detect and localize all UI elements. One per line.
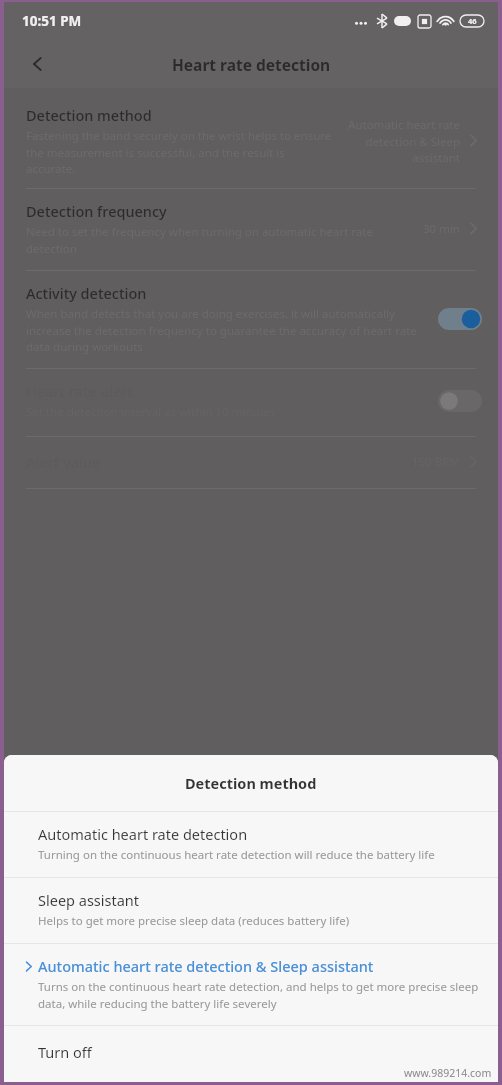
staticText: Turn off	[38, 1042, 92, 1062]
staticText: 10:51 PM	[22, 12, 82, 30]
staticText: Automatic heart rate detection & Sleep a…	[340, 117, 460, 165]
staticText: Activity detection	[26, 283, 147, 303]
staticText: 46	[468, 16, 477, 26]
staticText: Detection frequency	[26, 201, 167, 221]
staticText: Helps to get more precise sleep data (re…	[38, 913, 350, 929]
button[interactable]: Automatic heart rate detection & Sleep a…	[4, 944, 498, 1025]
button[interactable]: Activity detection	[4, 271, 498, 368]
staticText: When band detects that you are doing exe…	[26, 306, 428, 354]
staticText: www.989214.com	[404, 1066, 492, 1080]
staticText: Automatic heart rate detection	[38, 824, 248, 844]
button[interactable]: Automatic heart rate detection	[4, 812, 498, 877]
staticText: Detection method	[26, 105, 152, 125]
button[interactable]: Back	[18, 44, 58, 84]
staticText: 30 min	[423, 221, 460, 237]
button[interactable]: Toggle off	[438, 390, 482, 412]
staticText: Sleep assistant	[38, 890, 140, 910]
button[interactable]: Toggle on	[438, 308, 482, 330]
button[interactable]: Turn off	[4, 1026, 498, 1082]
staticText: Heart rate detection	[172, 54, 331, 75]
button[interactable]: Detection method	[4, 95, 498, 188]
button[interactable]: Sleep assistant	[4, 878, 498, 943]
staticText: Detection method	[185, 773, 317, 793]
button[interactable]: Detection frequency	[4, 189, 498, 270]
staticText: Automatic heart rate detection & Sleep a…	[38, 956, 374, 976]
staticText: Turns on the continuous heart rate detec…	[38, 979, 480, 1011]
staticText: Turning on the continuous heart rate det…	[38, 847, 435, 863]
